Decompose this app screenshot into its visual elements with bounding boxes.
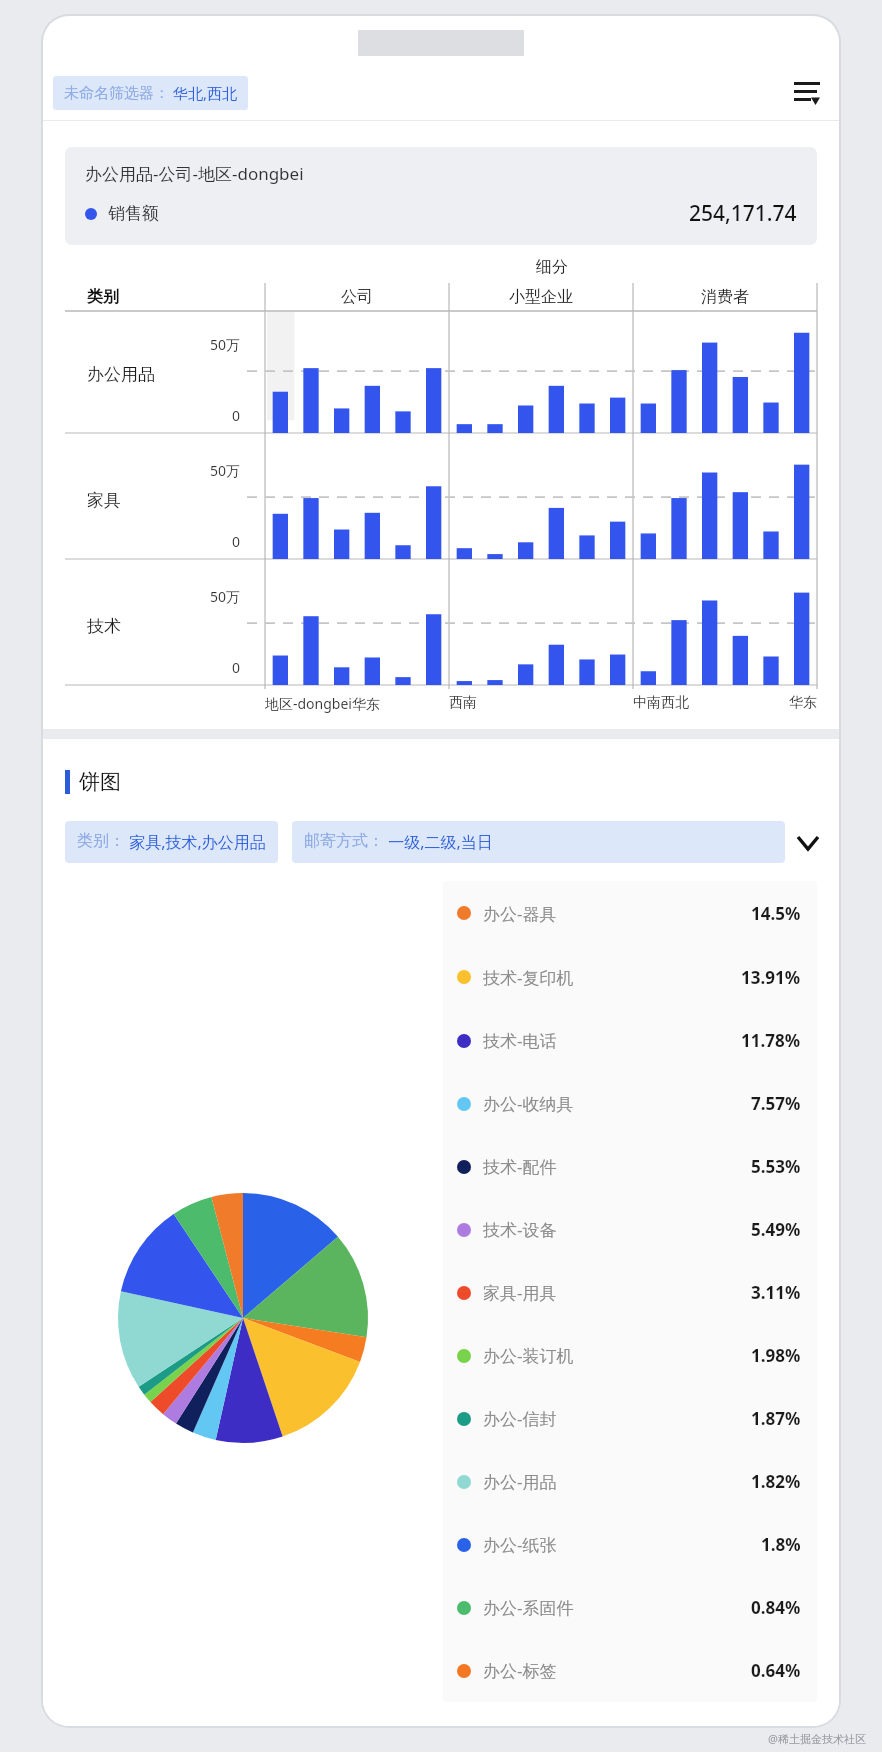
staticText: 13.91% [741,966,801,989]
button[interactable]: 邮寄方式： [292,821,785,863]
staticText: 类别 [87,287,119,307]
staticText: 1.98% [751,1344,801,1367]
button[interactable]: 家具-用具 [457,1261,801,1324]
staticText: 5.49% [751,1218,801,1241]
staticText: 3.11% [751,1281,801,1304]
staticText: 一级,二级,当日 [384,831,493,853]
button[interactable]: 办公-标签 [457,1639,801,1702]
staticText: 办公-纸张 [483,1533,557,1556]
staticText: 50万 [190,587,240,606]
staticText: 50万 [190,335,240,354]
button[interactable]: 办公-用品 [457,1450,801,1513]
button[interactable]: 办公-信封 [457,1387,801,1450]
button[interactable]: 办公-收纳具 [457,1072,801,1135]
staticText: 饼图 [79,769,121,795]
staticText: 7.57% [751,1092,801,1115]
staticText: 西南 [449,694,477,712]
button[interactable]: 技术-设备 [457,1198,801,1261]
staticText: 办公-标签 [483,1659,557,1682]
staticText: 华东 [789,694,817,712]
staticText: 办公-系固件 [483,1596,574,1619]
button[interactable]: 技术-电话 [457,1009,801,1072]
button[interactable]: 办公-纸张 [457,1513,801,1576]
button[interactable]: 技术-配件 [457,1135,801,1198]
staticText: 0 [190,406,240,425]
staticText: 办公-装订机 [483,1344,574,1367]
staticText: 技术-电话 [483,1029,557,1052]
staticText: 0 [190,532,240,551]
staticText: 1.82% [751,1470,801,1493]
staticText: 办公-收纳具 [483,1092,574,1115]
button[interactable]: 技术-复印机 [457,945,801,1009]
staticText: 邮寄方式： [304,831,384,851]
staticText: 5.53% [751,1155,801,1178]
staticText: 未命名筛选器： [64,84,169,103]
staticText: 254,171.74 [689,199,797,228]
staticText: 办公-用品 [483,1470,557,1493]
button[interactable]: Filter list [785,71,829,115]
staticText: 0.84% [751,1596,801,1619]
staticText: 办公-信封 [483,1407,557,1430]
button[interactable]: 办公-器具 [457,881,801,945]
staticText: 细分 [536,257,568,277]
staticText: 销售额 [108,203,159,224]
staticText: 公司 [341,287,373,307]
staticText: 0.64% [751,1659,801,1682]
staticText: 0 [190,658,240,677]
staticText: 1.87% [751,1407,801,1430]
button[interactable]: 未命名筛选器： [53,76,248,110]
staticText: 家具-用具 [483,1281,557,1304]
staticText: 小型企业 [509,287,573,307]
staticText: 办公-器具 [483,902,557,925]
staticText: 1.8% [761,1533,801,1556]
staticText: 办公用品 [87,364,155,385]
staticText: 14.5% [751,902,801,925]
staticText: 办公用品-公司-地区-dongbei [85,162,304,185]
staticText: 50万 [190,461,240,480]
staticText: 华北,西北 [169,83,237,103]
staticText: 类别： [77,831,125,851]
staticText: 消费者 [701,287,749,307]
staticText: 家具 [87,490,121,511]
staticText: 11.78% [741,1029,801,1052]
staticText: 技术-复印机 [483,966,574,989]
staticText: 技术-配件 [483,1155,557,1178]
button[interactable]: 办公-系固件 [457,1576,801,1639]
staticText: @稀土掘金技术社区 [768,1731,866,1746]
staticText: 中南西北 [633,694,689,712]
staticText: 技术 [87,616,121,637]
staticText: 家具,技术,办公用品 [125,831,266,853]
staticText: 地区-dongbei华东 [265,694,380,713]
button[interactable]: 类别： [65,821,278,863]
button[interactable]: Expand filters [785,819,831,865]
button[interactable]: 办公-装订机 [457,1324,801,1387]
staticText: 技术-设备 [483,1218,557,1241]
